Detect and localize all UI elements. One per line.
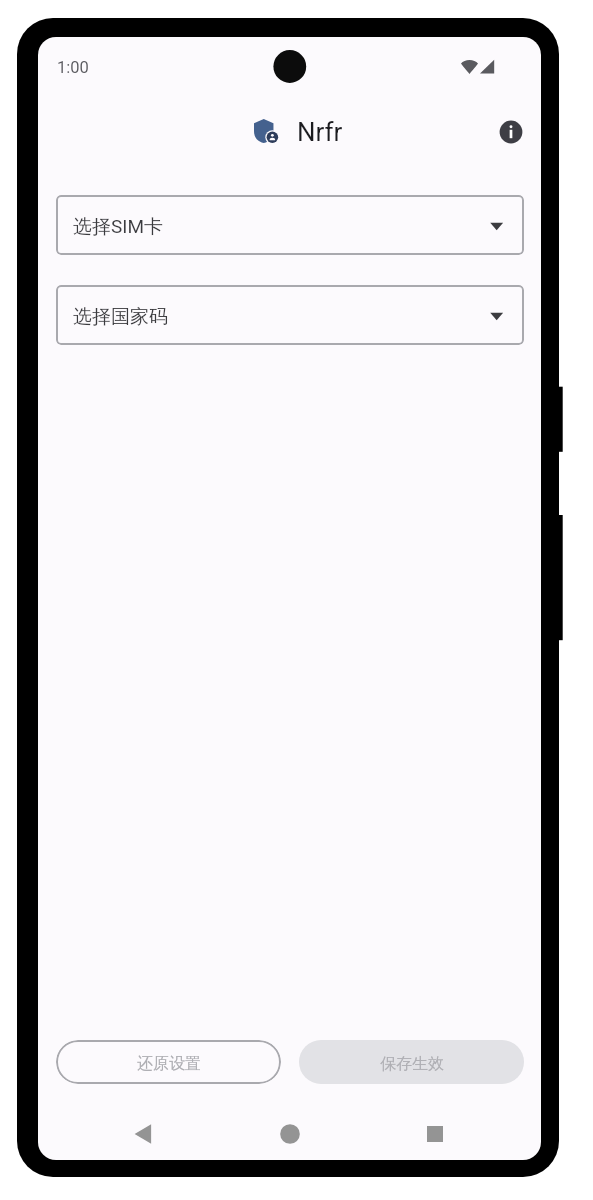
button[interactable]: Back bbox=[119, 1110, 167, 1158]
button[interactable]: Info bbox=[491, 112, 531, 152]
button[interactable]: Recents bbox=[411, 1110, 459, 1158]
button[interactable]: 还原设置 bbox=[56, 1040, 281, 1084]
button[interactable]: 选择SIM卡 bbox=[56, 195, 524, 255]
staticText: 选择SIM卡 bbox=[73, 215, 164, 239]
staticText: 1:00 bbox=[57, 58, 89, 77]
staticText: 还原设置 bbox=[137, 1054, 201, 1074]
button[interactable]: Home bbox=[266, 1110, 314, 1158]
staticText: 保存生效 bbox=[380, 1054, 444, 1074]
staticText: 选择国家码 bbox=[73, 305, 168, 329]
staticText: Nrfr bbox=[297, 117, 343, 147]
button[interactable]: 选择国家码 bbox=[56, 285, 524, 345]
button[interactable]: 保存生效 bbox=[299, 1040, 524, 1084]
